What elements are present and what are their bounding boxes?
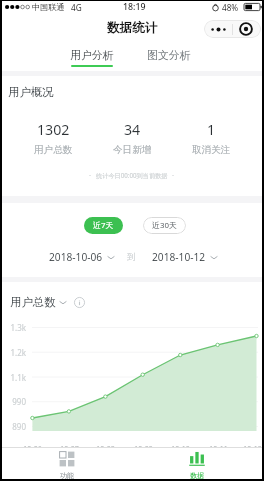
staticText: 近7天 bbox=[93, 220, 114, 231]
button[interactable]: 2018-10-12 bbox=[152, 250, 218, 264]
button[interactable]: 近7天 bbox=[84, 217, 123, 234]
staticText: 统计今日00:00到当前数据 bbox=[96, 171, 168, 179]
staticText: 数据 bbox=[190, 471, 205, 479]
staticText: 10-10 bbox=[171, 444, 190, 454]
staticText: 到 bbox=[127, 252, 136, 263]
staticText: 4G bbox=[71, 2, 82, 13]
staticText: 1.2k bbox=[10, 347, 26, 358]
button[interactable]: 2018-10-06 bbox=[49, 250, 115, 264]
staticText: 34 bbox=[124, 120, 141, 139]
button[interactable]: 用户分析 bbox=[53, 38, 130, 71]
button[interactable]: 功能 bbox=[2, 448, 132, 479]
staticText: 功能 bbox=[60, 471, 75, 479]
staticText: 1302 bbox=[37, 120, 70, 139]
staticText: 10-12 bbox=[243, 444, 262, 454]
staticText: 2018-10-06 bbox=[49, 250, 103, 264]
button[interactable]: 图文分析 bbox=[130, 38, 207, 71]
staticText: 数据统计 bbox=[107, 20, 158, 36]
staticText: 1 bbox=[207, 120, 216, 139]
staticText: 18:19 bbox=[123, 1, 146, 13]
button[interactable]: More options bbox=[204, 20, 261, 38]
staticText: 取消关注 bbox=[192, 144, 231, 156]
staticText: 2018-10-12 bbox=[152, 250, 206, 264]
staticText: 用户总数 bbox=[10, 295, 56, 309]
staticText: 890 bbox=[12, 421, 26, 432]
staticText: 今日新增 bbox=[113, 144, 152, 156]
staticText: 近30天 bbox=[152, 220, 177, 231]
button[interactable]: 近30天 bbox=[143, 217, 186, 234]
staticText: 中国联通 bbox=[32, 2, 65, 12]
staticText: 图文分析 bbox=[147, 49, 191, 63]
staticText: · bbox=[172, 170, 175, 180]
staticText: 10-11 bbox=[209, 444, 228, 454]
staticText: 用户总数 bbox=[34, 144, 73, 156]
staticText: 10-09 bbox=[134, 444, 153, 454]
staticText: 用户概况 bbox=[8, 85, 54, 99]
staticText: 10-08 bbox=[96, 444, 115, 454]
staticText: 1.1k bbox=[10, 372, 26, 383]
staticText: 10-07 bbox=[60, 444, 79, 454]
staticText: · bbox=[89, 170, 92, 180]
button[interactable]: 数据 bbox=[132, 448, 262, 479]
staticText: 1.3k bbox=[10, 322, 26, 333]
staticText: 990 bbox=[12, 396, 26, 407]
staticText: 48% bbox=[222, 2, 239, 13]
staticText: 10-06 bbox=[23, 444, 42, 454]
staticText: 用户分析 bbox=[70, 49, 114, 63]
